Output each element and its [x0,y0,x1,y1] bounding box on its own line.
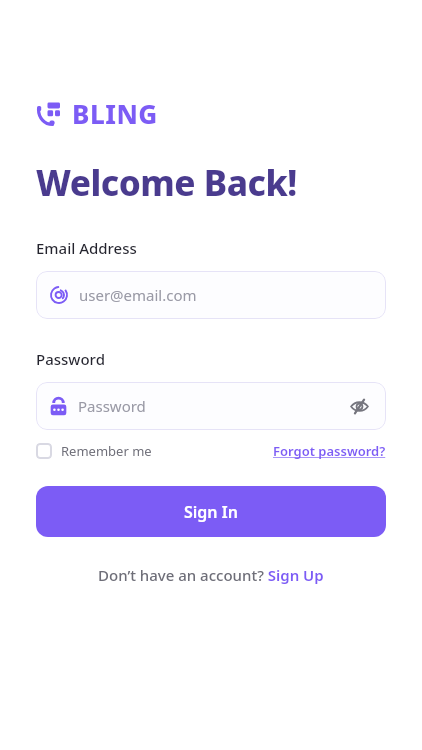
button[interactable]: Show password [346,393,372,419]
button[interactable]: Forgot password? [273,442,386,460]
staticText: user@email.com [79,285,197,305]
other: Bling logo [36,100,62,128]
staticText: Don’t have an account? Sign Up [98,565,324,585]
staticText: Password [36,349,105,369]
staticText: Forgot password? [273,442,386,460]
button[interactable]: Sign In [36,486,386,537]
staticText: Remember me [61,442,152,460]
staticText: Email Address [36,238,137,258]
button[interactable]: Bling logo [36,96,158,131]
staticText: Welcome Back! [36,159,297,207]
button[interactable]: Don’t have an account? Sign Up [98,565,324,585]
button[interactable]: Remember me [36,442,152,460]
staticText: Sign In [184,501,238,523]
button[interactable]: Email [36,271,386,319]
other: Email [50,286,68,304]
other: Password [50,397,67,416]
button[interactable]: Password [36,382,386,430]
staticText: BLING [72,96,158,131]
staticText: Password [78,396,146,416]
